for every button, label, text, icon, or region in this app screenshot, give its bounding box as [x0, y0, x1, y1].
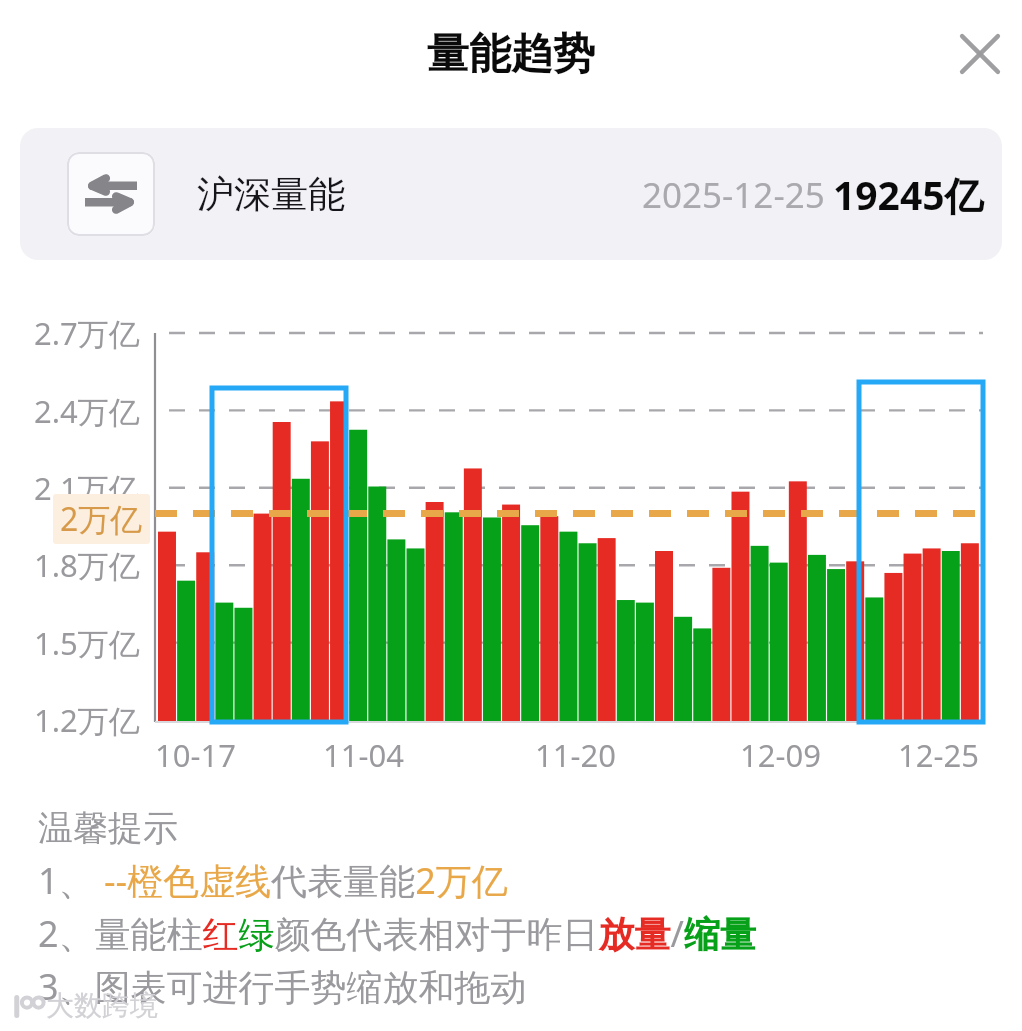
- button[interactable]: Switch market: [20, 128, 1002, 260]
- staticText: 2.4万亿: [34, 390, 140, 432]
- staticText: 12-09: [740, 734, 821, 776]
- staticText: 2025-12-25: [642, 171, 825, 219]
- staticText: 大数跨境: [46, 988, 158, 1023]
- staticText: 沪深量能: [197, 171, 345, 218]
- staticText: 12-25: [898, 734, 979, 776]
- staticText: 11-04: [323, 734, 404, 776]
- staticText: 量能趋势: [427, 28, 595, 81]
- staticText: 3、图表可进行手势缩放和拖动: [38, 962, 527, 1011]
- staticText: 1.2万亿: [34, 699, 140, 741]
- staticText: 2、量能柱红绿颜色代表相对于昨日放量/缩量: [38, 909, 756, 958]
- staticText: 10-17: [155, 734, 236, 776]
- staticText: 1.5万亿: [34, 622, 140, 664]
- button[interactable]: Close: [952, 26, 1008, 82]
- staticText: 2万亿: [60, 497, 143, 541]
- staticText: 2.1万亿: [34, 467, 140, 509]
- staticText: 2.7万亿: [34, 312, 140, 354]
- staticText: 1.8万亿: [34, 544, 140, 586]
- staticText: 1、 --橙色虚线代表量能2万亿: [38, 856, 508, 905]
- staticText: 温馨提示: [38, 806, 178, 850]
- staticText: 11-20: [535, 734, 616, 776]
- other: Switch market: [67, 152, 155, 236]
- staticText: 19245亿: [833, 168, 984, 221]
